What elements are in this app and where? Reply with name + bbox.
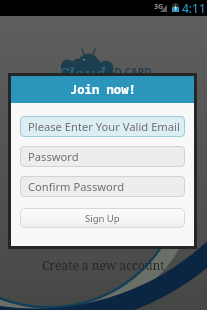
staticText: Password xyxy=(28,149,79,164)
button[interactable]: Sign Up xyxy=(20,208,185,228)
staticText: 4:11 xyxy=(182,0,206,16)
staticText: Sign Up xyxy=(85,212,120,225)
staticText: Create a new account xyxy=(42,257,165,273)
button[interactable]: Password xyxy=(20,146,185,167)
button[interactable]: Please Enter Your Valid Email xyxy=(20,116,185,137)
button[interactable]: Confirm Password xyxy=(20,176,185,197)
staticText: Join now! xyxy=(70,81,136,98)
staticText: SD CARD xyxy=(109,65,152,79)
staticText: 3G xyxy=(154,2,164,12)
staticText: Please Enter Your Valid Email xyxy=(28,119,180,134)
staticText: Confirm Password xyxy=(28,179,125,194)
button[interactable]: Join now! xyxy=(11,76,194,103)
staticText: Cloud xyxy=(58,63,106,85)
